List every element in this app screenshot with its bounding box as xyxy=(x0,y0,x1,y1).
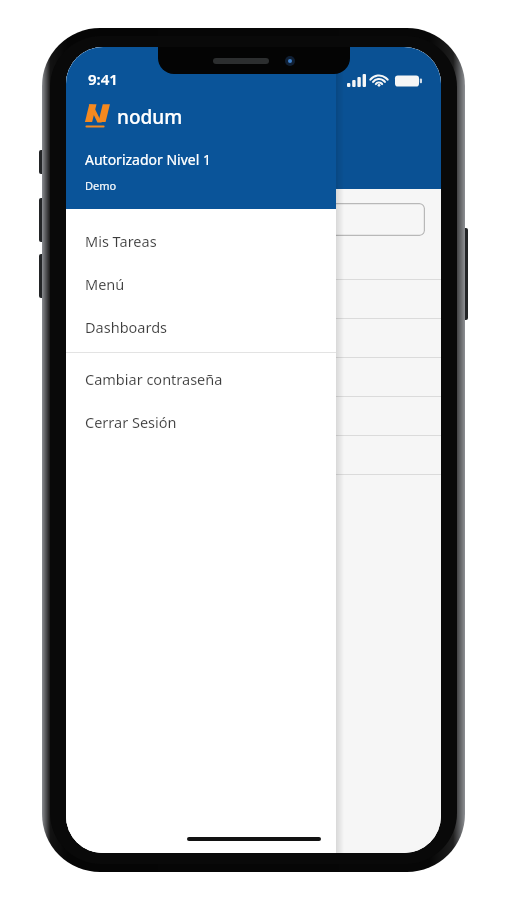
staticText: Demo xyxy=(85,178,117,193)
button[interactable]: Cambiar contraseña xyxy=(66,357,336,400)
staticText: nodum xyxy=(117,104,183,130)
button[interactable]: Mis Tareas xyxy=(66,219,336,262)
button[interactable]: Menú xyxy=(66,262,336,305)
staticText: Mis Tareas xyxy=(85,231,157,251)
staticText: Cerrar Sesión xyxy=(85,412,177,432)
button[interactable] xyxy=(82,203,425,236)
staticText: Dashboards xyxy=(85,317,168,337)
button[interactable]: Cerrar Sesión xyxy=(66,400,336,443)
button[interactable] xyxy=(66,436,441,474)
staticText: Autorizador Nivel 1 xyxy=(85,150,211,169)
staticText: Menú xyxy=(85,274,125,294)
staticText: 9:41 xyxy=(88,69,118,89)
other: Home xyxy=(187,837,321,841)
staticText: Cambiar contraseña xyxy=(85,369,223,389)
button[interactable] xyxy=(66,475,441,513)
button[interactable]: Dashboards xyxy=(66,305,336,348)
button[interactable] xyxy=(66,358,441,396)
button[interactable] xyxy=(66,397,441,435)
staticText: Dashboards xyxy=(122,148,219,171)
button[interactable] xyxy=(66,280,441,318)
button[interactable] xyxy=(66,319,441,357)
